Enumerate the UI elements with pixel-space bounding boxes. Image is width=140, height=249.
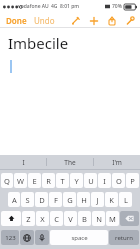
staticText: Done — [6, 15, 27, 26]
staticText: W — [17, 176, 24, 186]
button[interactable]: S — [21, 192, 34, 207]
staticText: C — [54, 214, 59, 224]
staticText: 4G — [51, 3, 58, 10]
staticText: I'm — [112, 158, 122, 167]
staticText: N — [96, 214, 102, 224]
button[interactable]: J — [91, 192, 104, 207]
button[interactable]: Y — [70, 173, 83, 188]
staticText: B — [82, 214, 87, 224]
staticText: Q — [4, 176, 10, 186]
staticText: return — [115, 234, 133, 242]
button[interactable]: D — [35, 192, 48, 207]
staticText: D — [39, 195, 45, 205]
staticText: L — [124, 195, 128, 205]
button[interactable]: Z — [22, 211, 35, 226]
button[interactable]: Checklist — [70, 15, 81, 26]
staticText: 8:01 pm — [60, 3, 80, 10]
button[interactable]: M — [106, 211, 119, 226]
staticText: V — [68, 214, 73, 224]
staticText: 70% — [112, 3, 122, 10]
staticText: 123 — [5, 234, 16, 242]
button[interactable]: return — [109, 230, 139, 245]
staticText: E — [32, 176, 37, 186]
button[interactable]: The — [47, 155, 93, 169]
staticText: F — [54, 195, 58, 205]
staticText: J — [96, 195, 99, 205]
button[interactable]: K — [105, 192, 118, 207]
staticText: G — [67, 195, 73, 205]
button[interactable]: V — [64, 211, 77, 226]
staticText: space — [71, 234, 88, 242]
staticText: I — [22, 158, 25, 167]
button[interactable]: Q — [1, 173, 13, 188]
staticText: O — [116, 176, 122, 186]
button[interactable]: Done — [5, 15, 28, 26]
button[interactable]: T — [56, 173, 69, 188]
staticText: S — [25, 195, 30, 205]
button[interactable]: N — [92, 211, 105, 226]
button[interactable]: X — [36, 211, 49, 226]
staticText: H — [81, 195, 87, 205]
staticText: Z — [26, 214, 31, 224]
button[interactable]: R — [42, 173, 55, 188]
staticText: T — [60, 176, 65, 186]
staticText: U — [88, 176, 94, 186]
button[interactable]: Backspace — [120, 211, 139, 226]
button[interactable]: P — [126, 173, 139, 188]
button[interactable]: Add — [88, 15, 99, 26]
staticText: P — [130, 176, 135, 186]
button[interactable]: Change keyboard — [20, 230, 34, 245]
staticText: K — [109, 195, 114, 205]
button[interactable]: A — [8, 192, 20, 207]
button[interactable]: I'm — [94, 155, 140, 169]
button[interactable]: 123 — [1, 230, 19, 245]
button[interactable]: Settings — [124, 15, 135, 26]
button[interactable]: Share — [106, 15, 117, 26]
staticText: I — [103, 176, 106, 186]
staticText: The — [64, 158, 76, 167]
button[interactable]: O — [112, 173, 125, 188]
button[interactable]: space — [50, 230, 108, 245]
button[interactable]: Dictate — [35, 230, 49, 245]
staticText: Imbecile — [8, 33, 69, 53]
button[interactable]: Shift — [1, 211, 21, 226]
button[interactable]: G — [63, 192, 76, 207]
staticText: vodafone AU — [18, 3, 49, 10]
button[interactable]: C — [50, 211, 63, 226]
staticText: A — [12, 195, 17, 205]
staticText: M — [109, 214, 116, 224]
button[interactable]: E — [28, 173, 41, 188]
staticText: Y — [74, 176, 79, 186]
button[interactable]: L — [119, 192, 132, 207]
button[interactable]: I — [0, 155, 46, 169]
button[interactable]: Undo — [33, 15, 56, 26]
staticText: Undo — [34, 15, 55, 26]
button[interactable]: I — [98, 173, 111, 188]
staticText: R — [46, 176, 51, 186]
staticText: X — [40, 214, 45, 224]
button[interactable]: F — [49, 192, 62, 207]
button[interactable]: B — [78, 211, 91, 226]
button[interactable]: H — [77, 192, 90, 207]
button[interactable]: W — [14, 173, 27, 188]
button[interactable]: U — [84, 173, 97, 188]
